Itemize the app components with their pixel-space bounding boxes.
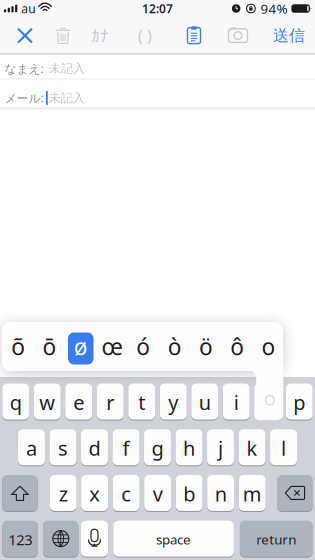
staticText: ö: [199, 331, 213, 361]
button[interactable]: h: [176, 429, 202, 466]
button[interactable]: 次のキーボード: [43, 520, 79, 557]
button[interactable]: シフト: [2, 474, 38, 511]
staticText: a: [26, 435, 37, 461]
staticText: e: [73, 389, 84, 416]
button[interactable]: w: [34, 383, 61, 420]
staticText: y: [168, 389, 178, 416]
button[interactable]: ｶﾅ: [83, 19, 117, 52]
button[interactable]: 括弧: [130, 17, 160, 54]
button[interactable]: õ: [2, 322, 34, 371]
staticText: j: [218, 435, 223, 461]
staticText: h: [183, 435, 195, 461]
staticText: u: [199, 389, 211, 416]
staticText: x: [89, 480, 100, 507]
button[interactable]: o: [254, 383, 281, 420]
staticText: p: [293, 389, 305, 416]
button[interactable]: œ: [96, 322, 128, 371]
button[interactable]: ô: [222, 322, 253, 371]
staticText: 123: [8, 530, 32, 549]
staticText: z: [59, 480, 68, 507]
button[interactable]: なまえ:: [0, 54, 315, 79]
button[interactable]: d: [81, 429, 108, 466]
button[interactable]: j: [207, 429, 234, 466]
button[interactable]: e: [65, 383, 92, 420]
button[interactable]: l: [270, 429, 297, 466]
button[interactable]: a: [18, 429, 45, 466]
button[interactable]: q: [2, 383, 29, 420]
staticText: o: [264, 385, 276, 411]
button[interactable]: o: [253, 322, 284, 371]
staticText: m: [243, 480, 262, 507]
staticText: t: [138, 389, 145, 416]
button[interactable]: ó: [128, 322, 159, 371]
staticText: r: [106, 389, 114, 416]
staticText: 12:07: [142, 0, 173, 16]
button[interactable]: s: [50, 429, 76, 466]
button[interactable]: カメラ: [220, 21, 255, 50]
staticText: au: [21, 0, 35, 16]
staticText: ｶﾅ: [91, 27, 109, 44]
button[interactable]: u: [191, 383, 218, 420]
staticText: ô: [230, 331, 244, 361]
button[interactable]: b: [176, 474, 203, 511]
staticText: c: [121, 480, 131, 507]
button[interactable]: v: [144, 474, 171, 511]
button[interactable]: t: [128, 383, 155, 420]
staticText: q: [10, 389, 22, 416]
staticText: v: [153, 480, 163, 507]
staticText: k: [246, 435, 257, 461]
staticText: w: [39, 389, 55, 416]
staticText: o: [262, 331, 276, 361]
button[interactable]: c: [113, 474, 140, 511]
button[interactable]: p: [286, 383, 313, 420]
button[interactable]: g: [144, 429, 171, 466]
button[interactable]: n: [207, 474, 234, 511]
staticText: ó: [136, 331, 150, 361]
button[interactable]: r: [97, 383, 124, 420]
button[interactable]: 音声入力: [81, 520, 108, 557]
staticText: ò: [168, 331, 182, 361]
staticText: ø: [74, 331, 88, 361]
staticText: 未記入: [49, 61, 85, 76]
button[interactable]: i: [223, 383, 250, 420]
button[interactable]: y: [160, 383, 187, 420]
staticText: ō: [42, 331, 56, 361]
staticText: s: [58, 435, 68, 461]
staticText: œ: [101, 331, 122, 361]
staticText: g: [151, 435, 163, 461]
button[interactable]: return: [240, 520, 313, 557]
staticText: ( ): [138, 25, 152, 46]
button[interactable]: 送信: [267, 20, 311, 51]
staticText: return: [256, 531, 296, 548]
staticText: b: [183, 480, 195, 507]
button[interactable]: 123: [2, 520, 38, 557]
button[interactable]: ò: [159, 322, 190, 371]
button[interactable]: space: [113, 520, 234, 557]
staticText: d: [88, 435, 100, 461]
staticText: なまえ:: [4, 61, 43, 76]
button[interactable]: m: [239, 474, 266, 511]
staticText: õ: [11, 331, 25, 361]
staticText: i: [234, 389, 239, 416]
button[interactable]: ō: [34, 322, 65, 371]
button[interactable]: ø: [65, 322, 96, 371]
button[interactable]: k: [239, 429, 265, 466]
staticText: l: [281, 435, 286, 461]
staticText: n: [215, 480, 227, 507]
button[interactable]: ペースト: [179, 20, 208, 52]
button[interactable]: 削除: [277, 474, 313, 511]
staticText: 94%: [260, 0, 287, 17]
button[interactable]: x: [81, 474, 108, 511]
button[interactable]: メール:: [0, 79, 315, 108]
staticText: space: [156, 531, 191, 548]
button[interactable]: f: [113, 429, 139, 466]
staticText: 未記入: [49, 91, 85, 105]
staticText: 送信: [273, 26, 305, 45]
button[interactable]: z: [50, 474, 77, 511]
button[interactable]: 閉じる: [10, 21, 40, 51]
button[interactable]: ö: [190, 322, 222, 371]
button[interactable]: 削除: [48, 19, 78, 52]
staticText: メール:: [4, 90, 43, 106]
staticText: f: [122, 435, 129, 461]
